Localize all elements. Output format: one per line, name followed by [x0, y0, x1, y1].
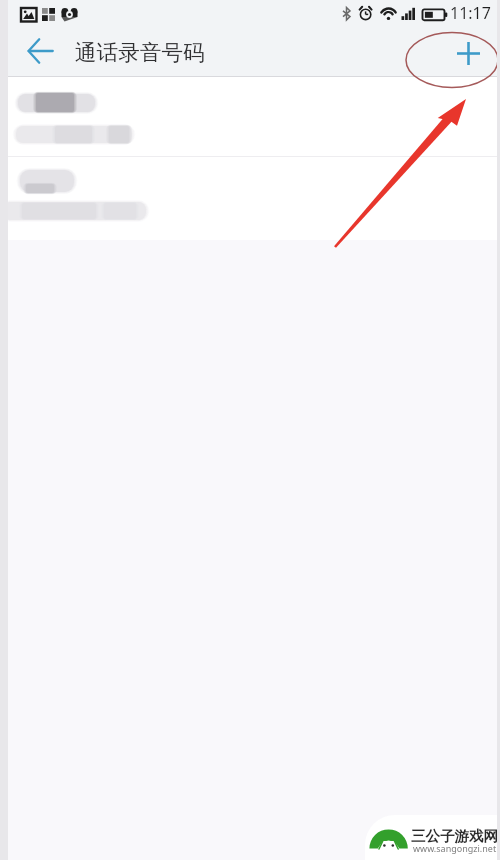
button[interactable]: Back: [22, 33, 58, 69]
staticText: www.sangongzi.net: [413, 842, 497, 854]
staticText: 三公子游戏网: [411, 827, 498, 845]
staticText: 通话录音号码: [75, 39, 205, 66]
button[interactable]: [0, 157, 500, 240]
button[interactable]: [0, 77, 500, 156]
button[interactable]: Add: [450, 35, 487, 72]
staticText: 11:17: [450, 2, 491, 24]
